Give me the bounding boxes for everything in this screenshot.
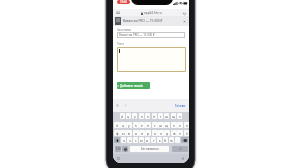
button[interactable]: м [139,137,144,143]
button[interactable]: Dictate [182,157,184,160]
staticText: л [160,131,162,136]
button[interactable]: у [132,113,137,119]
button[interactable]: й [114,122,120,128]
button[interactable]: Previous field [116,104,119,107]
button[interactable]: п [139,130,145,136]
button[interactable]: д [164,130,170,136]
button[interactable]: 123 [115,146,121,152]
button[interactable]: б [163,137,168,143]
button[interactable]: з [177,113,182,119]
staticText: т [153,138,155,143]
button[interactable]: г [152,122,158,128]
button[interactable]: Добавить новый пункт [117,82,150,89]
staticText: к [141,114,143,119]
button[interactable]: ё [184,130,189,136]
button[interactable]: н [145,122,151,128]
button[interactable]: Emoji [117,157,120,160]
button[interactable]: е [145,113,150,119]
button[interactable]: о [152,130,158,136]
staticText: Заголовок [117,28,132,32]
button[interactable]: с [133,137,138,143]
button[interactable]: . [175,137,180,143]
button[interactable]: и [145,137,150,143]
button[interactable]: ь [157,137,162,143]
button[interactable]: ъ [184,122,189,128]
button[interactable]: щ [171,113,176,119]
button[interactable]: Close [183,20,186,23]
staticText: э [179,131,181,136]
button[interactable]: р [145,130,151,136]
button[interactable]: Reload page [183,12,186,15]
button[interactable]: ж [171,130,177,136]
button[interactable]: н [152,113,157,119]
button[interactable]: г [158,113,163,119]
button[interactable]: Backspace [181,137,188,143]
button[interactable]: е [139,122,145,128]
button[interactable]: ⏎ [172,146,188,152]
button[interactable]: Без названия [130,146,169,152]
staticText: ф [116,131,119,136]
button[interactable]: в [126,130,132,136]
button[interactable]: х [177,122,183,128]
button[interactable]: к [133,122,139,128]
staticText: ь [159,138,161,143]
button[interactable]: ы [120,130,126,136]
staticText: щ [165,123,169,128]
staticText: д [166,131,169,136]
staticText: Добавить новый пункт [120,84,150,88]
button[interactable]: ю [169,137,174,143]
button[interactable]: щ [164,122,170,128]
staticText: AA [116,11,121,15]
staticText: з [179,114,181,119]
staticText: й [116,123,119,128]
staticText: в [128,131,130,136]
staticText: ш [159,123,163,128]
button[interactable]: Text size [116,11,121,15]
button[interactable]: Готово [175,104,186,108]
staticText: Вакансия PRO — 15 000 ₽ [119,33,155,37]
staticText: ю [170,138,173,143]
button[interactable]: й [120,113,125,119]
button[interactable]: э [177,130,183,136]
button[interactable]: ш [164,113,169,119]
button[interactable]: у [126,122,132,128]
button[interactable]: ц [126,113,131,119]
staticText: ё [186,131,188,136]
staticText: 18:04 [120,0,127,4]
staticText: щ [172,114,176,119]
staticText: я [123,138,125,143]
button[interactable]: а [133,130,139,136]
button[interactable]: Shift [114,137,120,143]
staticText: м [140,138,143,143]
staticText: е [147,114,149,119]
button[interactable]: app24.hh.ru [141,11,162,15]
staticText: . [177,138,178,143]
button[interactable]: к [139,113,144,119]
staticText: й [121,114,124,119]
button[interactable]: Next field [124,104,127,107]
staticText: с [135,138,137,143]
staticText: и [146,138,149,143]
staticText: б [164,138,167,143]
staticText: у [134,114,136,119]
button[interactable]: Вакансия PRO — 15 000 ₽ [117,32,185,38]
staticText: х [179,123,181,128]
button[interactable]: т [151,137,156,143]
button[interactable]: ш [158,122,164,128]
staticText: к [135,123,137,128]
button[interactable]: ц [120,122,126,128]
button[interactable]: я [121,137,126,143]
staticText: г [160,114,162,119]
staticText: е [141,123,143,128]
staticText: Без названия [141,147,159,151]
staticText: н [147,123,150,128]
button[interactable]: з [171,122,177,128]
staticText: Готово [175,104,186,108]
button[interactable] [117,47,186,72]
button[interactable]: ч [127,137,132,143]
button[interactable]: ф [114,130,120,136]
button[interactable]: Switch keyboard [122,146,128,152]
staticText: ъ [186,123,189,128]
button[interactable]: л [158,130,164,136]
staticText: ц [127,114,130,119]
